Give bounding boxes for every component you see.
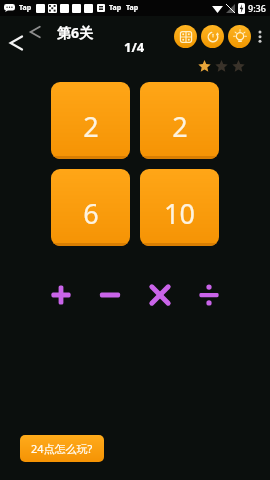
button[interactable]: More options	[254, 24, 266, 48]
button[interactable]: Divide	[192, 278, 226, 312]
button[interactable]: 10	[140, 169, 219, 246]
staticText: 24点怎么玩?	[31, 441, 93, 456]
staticText: Tap	[19, 3, 32, 13]
button[interactable]: Minus	[93, 278, 127, 312]
staticText: 1/4	[124, 38, 145, 56]
button[interactable]: Back	[4, 32, 26, 54]
staticText: 2	[83, 108, 99, 145]
button[interactable]: Numbers	[174, 25, 197, 48]
button[interactable]: Hint	[228, 25, 251, 48]
staticText: 第6关	[57, 23, 94, 42]
button[interactable]: 2	[51, 82, 130, 159]
button[interactable]: Multiply	[143, 278, 177, 312]
button[interactable]: Up	[24, 22, 44, 42]
button[interactable]: 6	[51, 169, 130, 246]
button[interactable]: Restart	[201, 25, 224, 48]
staticText: 2	[172, 108, 188, 145]
button[interactable]: Plus	[44, 278, 78, 312]
staticText: Tap	[126, 3, 139, 13]
staticText: 10	[164, 195, 195, 232]
staticText: Tap	[109, 3, 122, 13]
staticText: 9:36	[248, 2, 266, 14]
button[interactable]: 24点怎么玩?	[20, 435, 104, 462]
button[interactable]: 2	[140, 82, 219, 159]
staticText: 6	[83, 195, 99, 232]
